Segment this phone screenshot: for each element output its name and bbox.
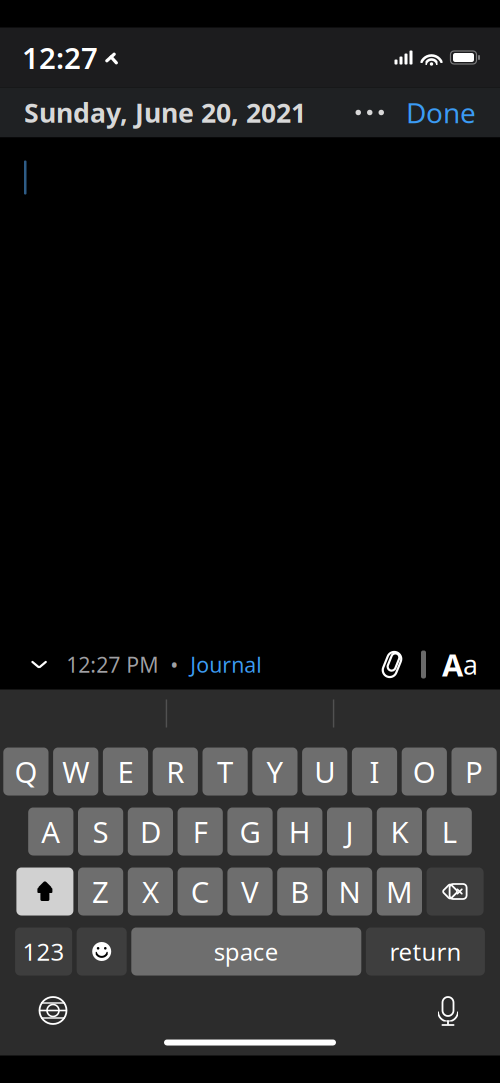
staticText: X: [142, 872, 159, 911]
button[interactable]: V: [227, 867, 273, 915]
button[interactable]: O: [402, 747, 447, 795]
button[interactable]: Delete: [427, 867, 484, 915]
staticText: K: [390, 812, 408, 851]
button[interactable]: space: [131, 927, 361, 975]
button[interactable]: I: [352, 747, 397, 795]
staticText: L: [442, 812, 457, 851]
staticText: return: [389, 936, 461, 967]
staticText: B: [290, 872, 309, 911]
staticText: I: [369, 752, 379, 791]
staticText: V: [241, 872, 259, 911]
button[interactable]: E: [103, 747, 148, 795]
button[interactable]: G: [227, 807, 273, 855]
button[interactable]: More: [347, 98, 392, 127]
button[interactable]: Q: [3, 747, 48, 795]
staticText: 12:27 PM •: [66, 650, 190, 679]
staticText: A: [442, 644, 463, 685]
button[interactable]: U: [302, 747, 347, 795]
button[interactable]: Numbers: [15, 927, 72, 975]
staticText: Done: [406, 94, 476, 131]
button[interactable]: N: [327, 867, 372, 915]
button[interactable]: P: [451, 747, 497, 795]
staticText: Z: [92, 872, 109, 911]
button[interactable]: H: [277, 807, 322, 855]
staticText: D: [140, 812, 161, 851]
staticText: C: [191, 872, 210, 911]
staticText: Q: [14, 752, 37, 791]
button[interactable]: X: [128, 867, 173, 915]
button[interactable]: Y: [252, 747, 297, 795]
staticText: F: [193, 812, 208, 851]
staticText: space: [214, 936, 279, 967]
button[interactable]: F: [178, 807, 223, 855]
button[interactable]: A: [28, 807, 73, 855]
staticText: Y: [266, 752, 283, 791]
button[interactable]: D: [128, 807, 173, 855]
staticText: U: [314, 752, 335, 791]
button[interactable]: M: [377, 867, 422, 915]
staticText: Journal: [190, 650, 262, 679]
button[interactable]: B: [277, 867, 322, 915]
staticText: G: [239, 812, 260, 851]
staticText: M: [386, 872, 413, 911]
button[interactable]: Journal: [190, 650, 262, 679]
button[interactable]: Done: [392, 86, 476, 139]
button[interactable]: Dictate: [422, 992, 474, 1028]
staticText: E: [117, 752, 133, 791]
staticText: T: [217, 752, 233, 791]
staticText: P: [465, 752, 483, 791]
button[interactable]: C: [178, 867, 223, 915]
button[interactable]: W: [53, 747, 98, 795]
button[interactable]: Attach: [379, 650, 405, 678]
button[interactable]: return: [366, 927, 485, 975]
staticText: 123: [23, 936, 65, 967]
button[interactable]: Next keyboard: [24, 989, 82, 1031]
staticText: R: [166, 752, 184, 791]
button[interactable]: T: [202, 747, 248, 795]
staticText: A: [41, 812, 60, 851]
button[interactable]: S: [78, 807, 123, 855]
button[interactable]: K: [377, 807, 422, 855]
button[interactable]: Format text: [442, 644, 478, 685]
button[interactable]: Z: [78, 867, 123, 915]
button[interactable]: J: [327, 807, 372, 855]
staticText: O: [413, 752, 436, 791]
staticText: W: [62, 752, 89, 791]
button[interactable]: R: [153, 747, 198, 795]
staticText: a: [463, 647, 478, 682]
staticText: H: [289, 812, 311, 851]
staticText: Sunday, June 20, 2021: [24, 95, 306, 130]
staticText: 12:27: [22, 38, 98, 77]
button[interactable]: Shift: [16, 867, 73, 915]
button[interactable]: L: [427, 807, 472, 855]
staticText: N: [339, 872, 361, 911]
button[interactable]: Collapse: [18, 647, 60, 681]
button[interactable]: Emoji: [77, 927, 127, 975]
staticText: J: [346, 812, 354, 851]
staticText: S: [93, 812, 109, 851]
